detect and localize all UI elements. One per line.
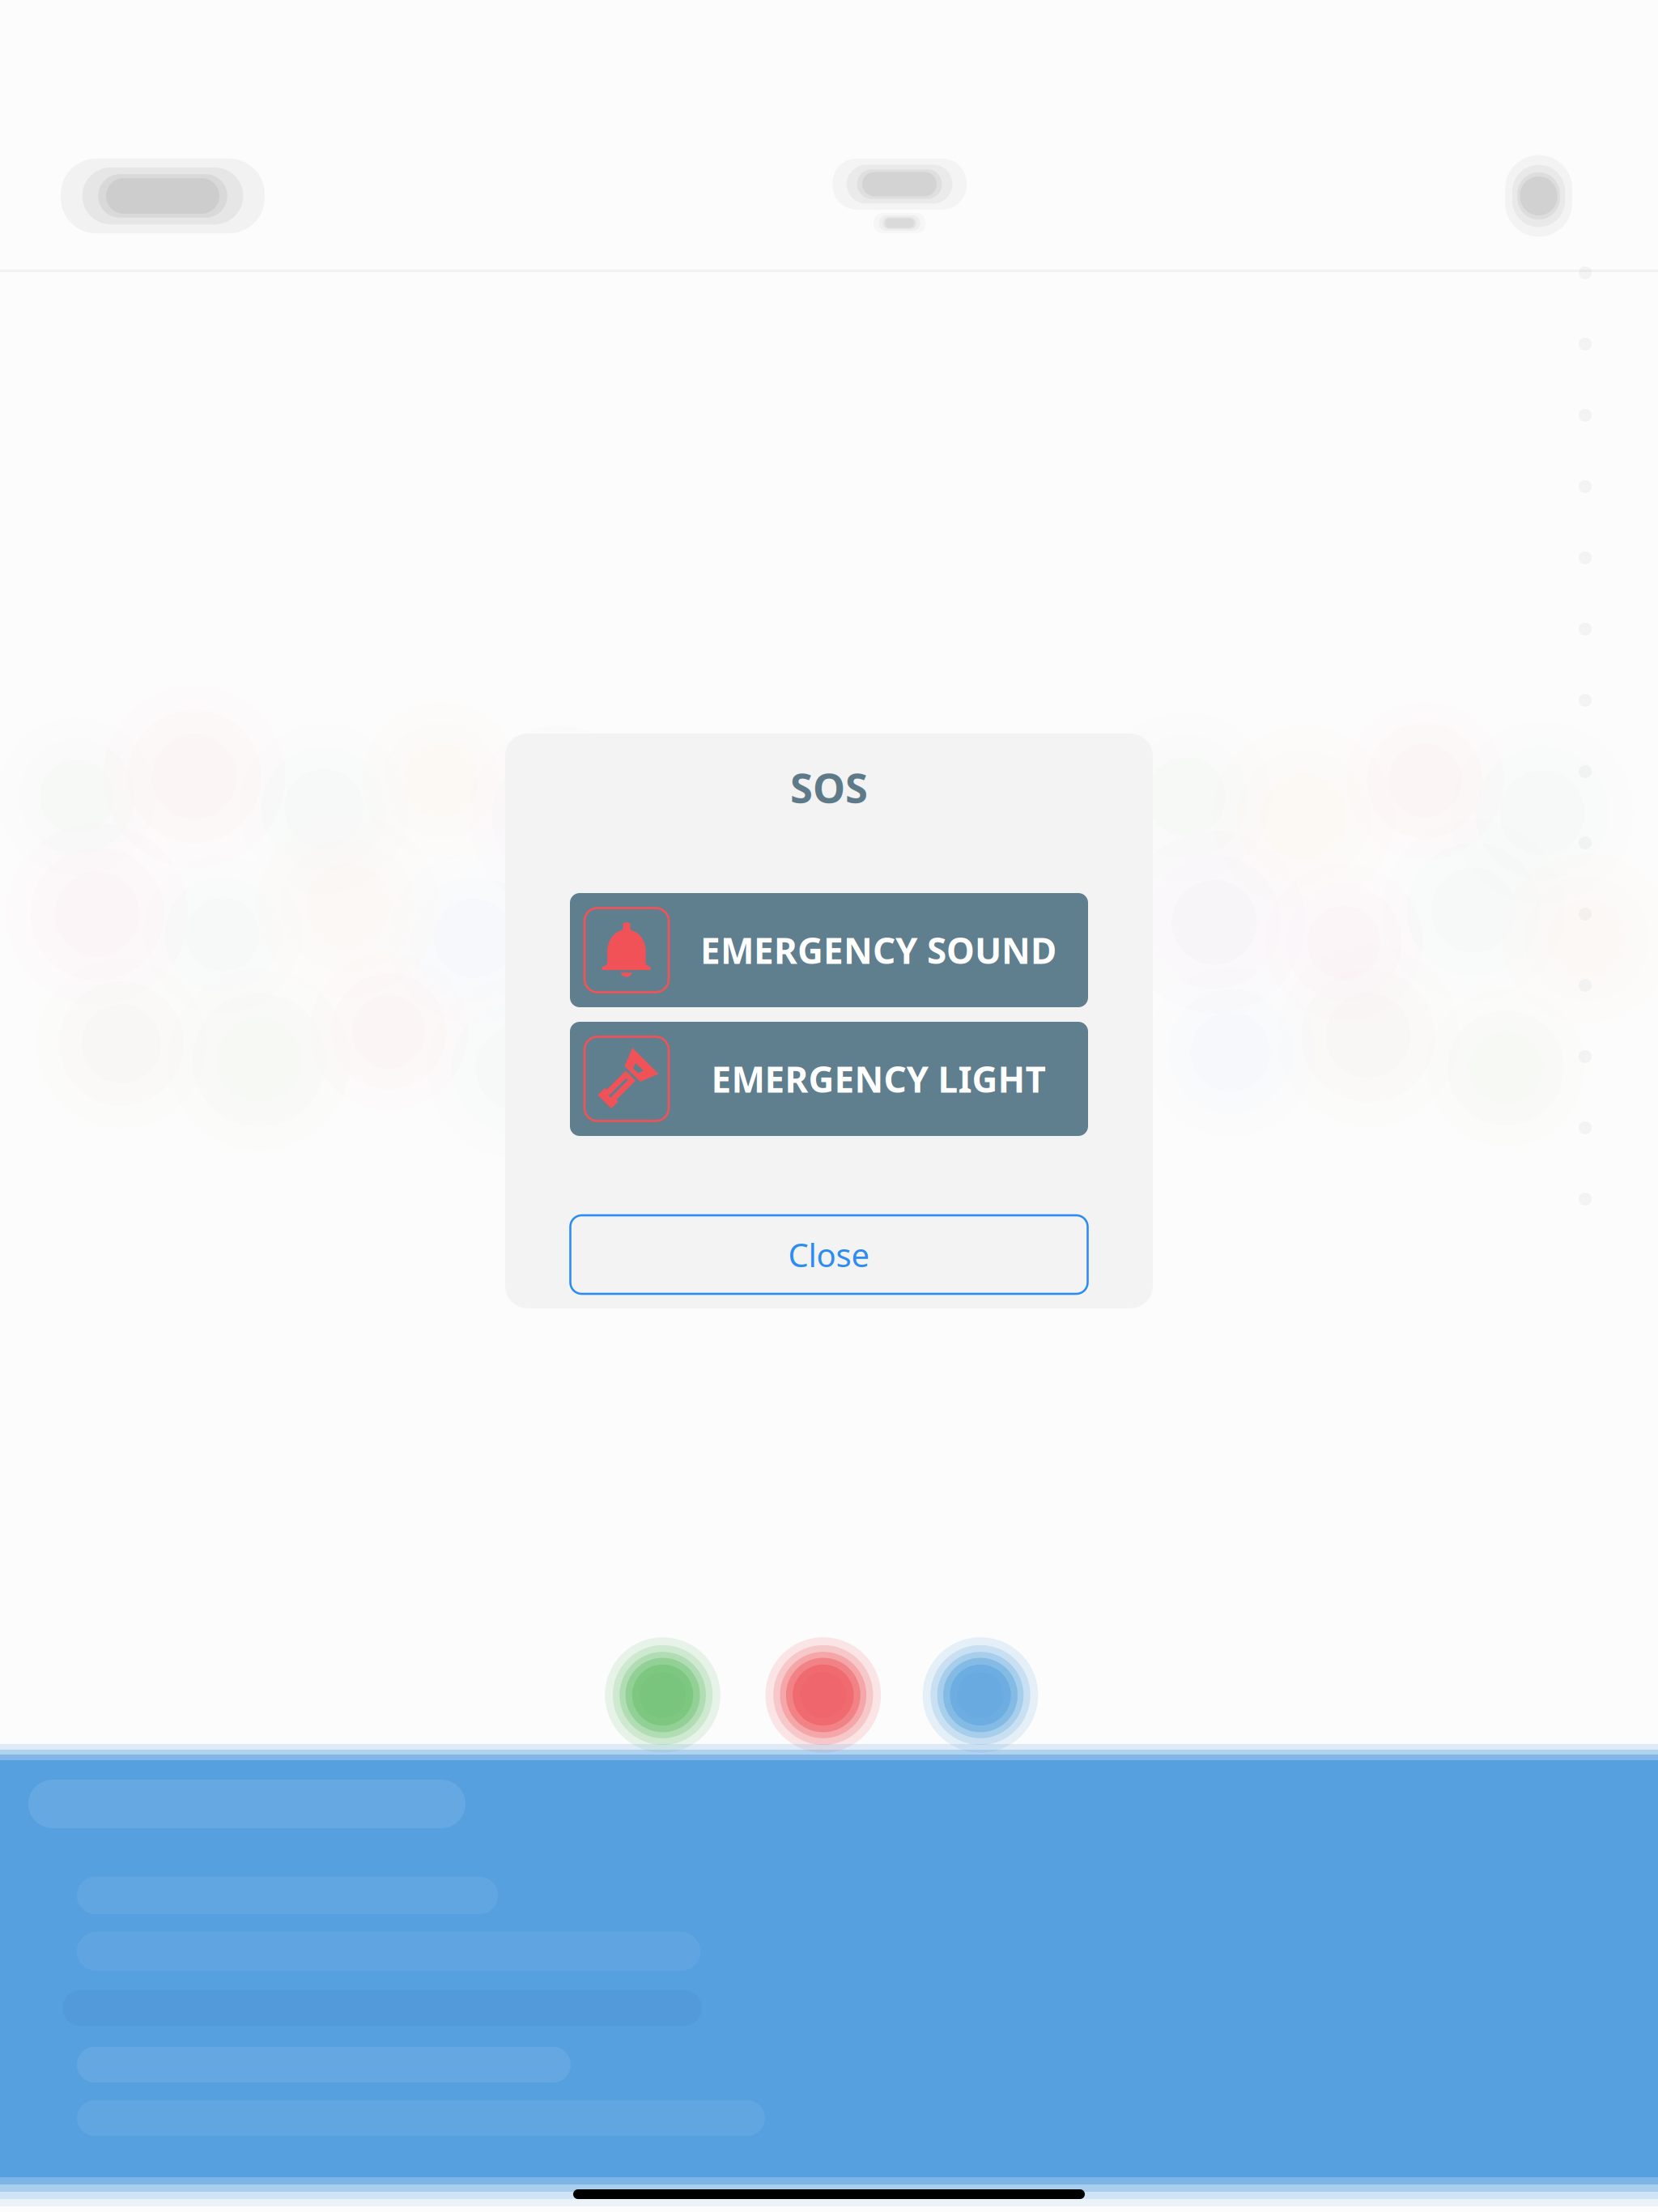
staticText: Close: [788, 1233, 870, 1276]
button[interactable]: EMERGENCY LIGHT: [570, 1022, 1088, 1136]
staticText: SOS: [790, 760, 868, 814]
staticText: EMERGENCY SOUND: [700, 926, 1056, 974]
staticText: EMERGENCY LIGHT: [711, 1055, 1046, 1103]
button[interactable]: EMERGENCY SOUND: [570, 893, 1088, 1007]
button[interactable]: Close: [570, 1215, 1088, 1294]
